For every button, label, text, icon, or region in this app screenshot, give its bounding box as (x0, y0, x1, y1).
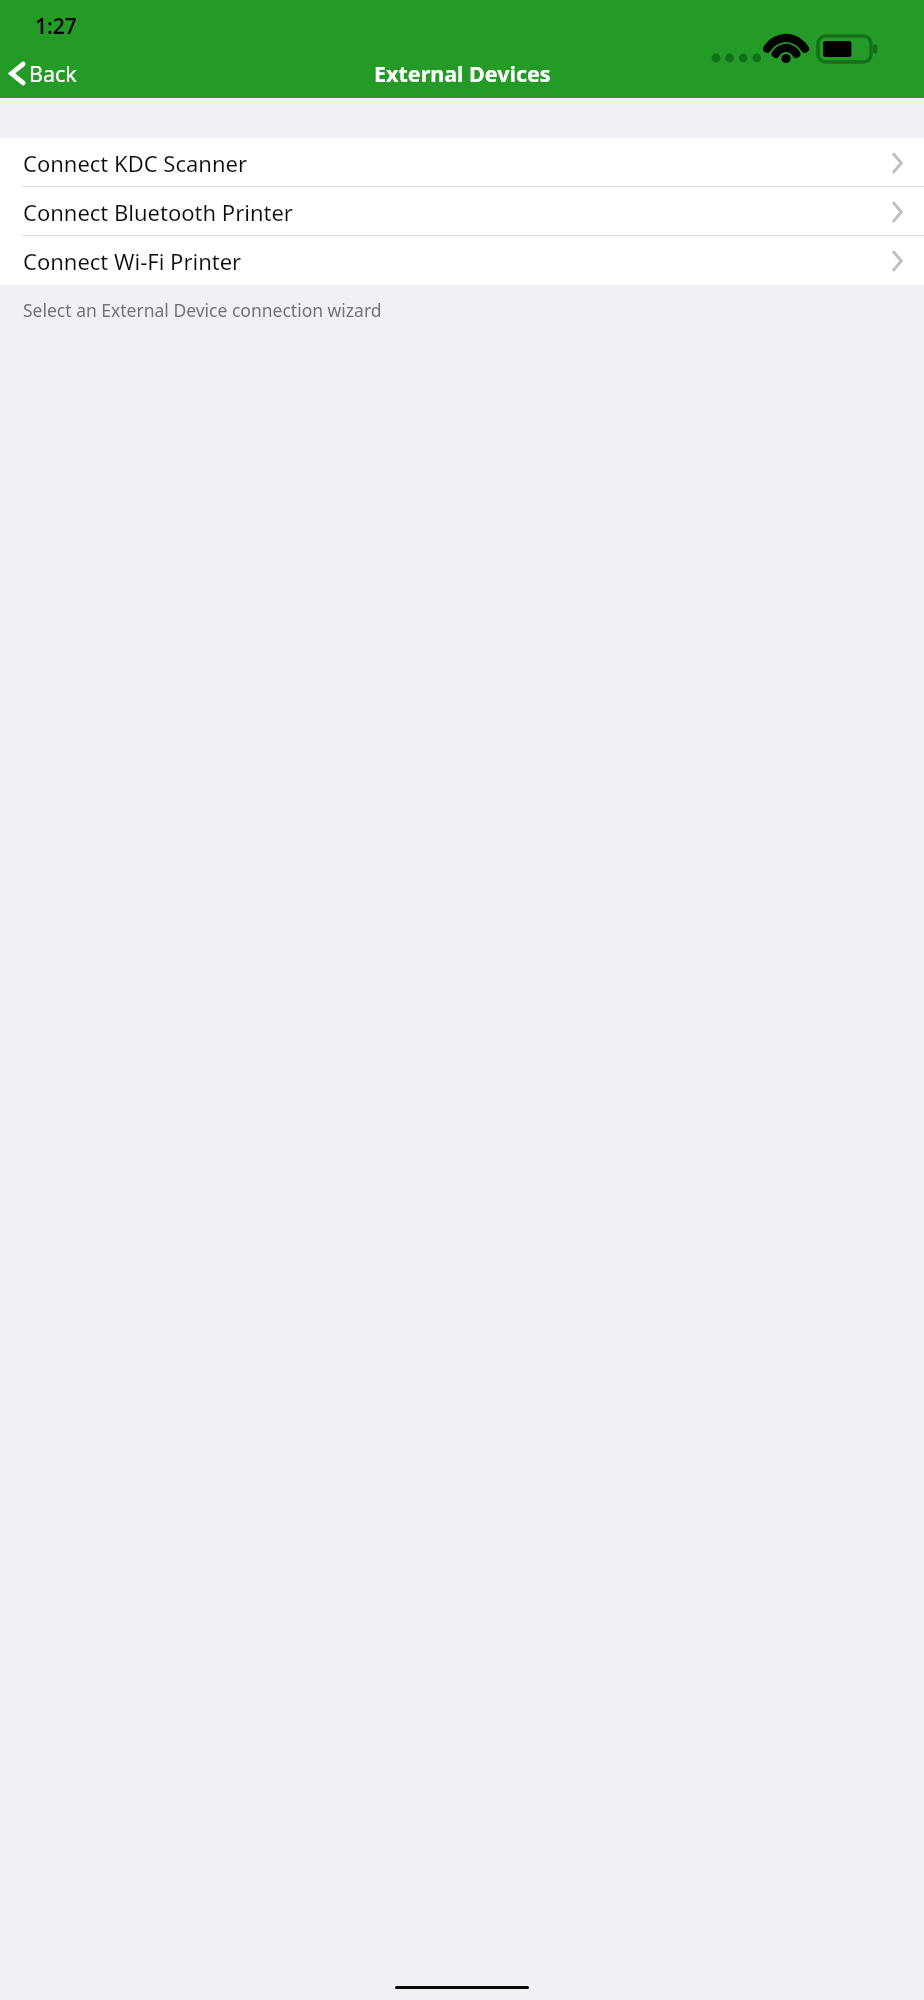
staticText: Back (29, 59, 77, 88)
staticText: External Devices (374, 59, 551, 88)
button[interactable]: Connect KDC Scanner (0, 138, 924, 187)
staticText: Connect Wi-Fi Printer (23, 246, 242, 276)
staticText: 1:27 (35, 12, 77, 41)
staticText: Connect KDC Scanner (23, 148, 248, 178)
button[interactable]: Connect Wi-Fi Printer (0, 236, 924, 285)
staticText: Connect Bluetooth Printer (23, 197, 293, 227)
staticText: Select an External Device connection wiz… (23, 298, 382, 322)
other: Back (9, 63, 25, 84)
button[interactable]: Connect Bluetooth Printer (0, 187, 924, 236)
button[interactable]: Back (0, 49, 89, 98)
